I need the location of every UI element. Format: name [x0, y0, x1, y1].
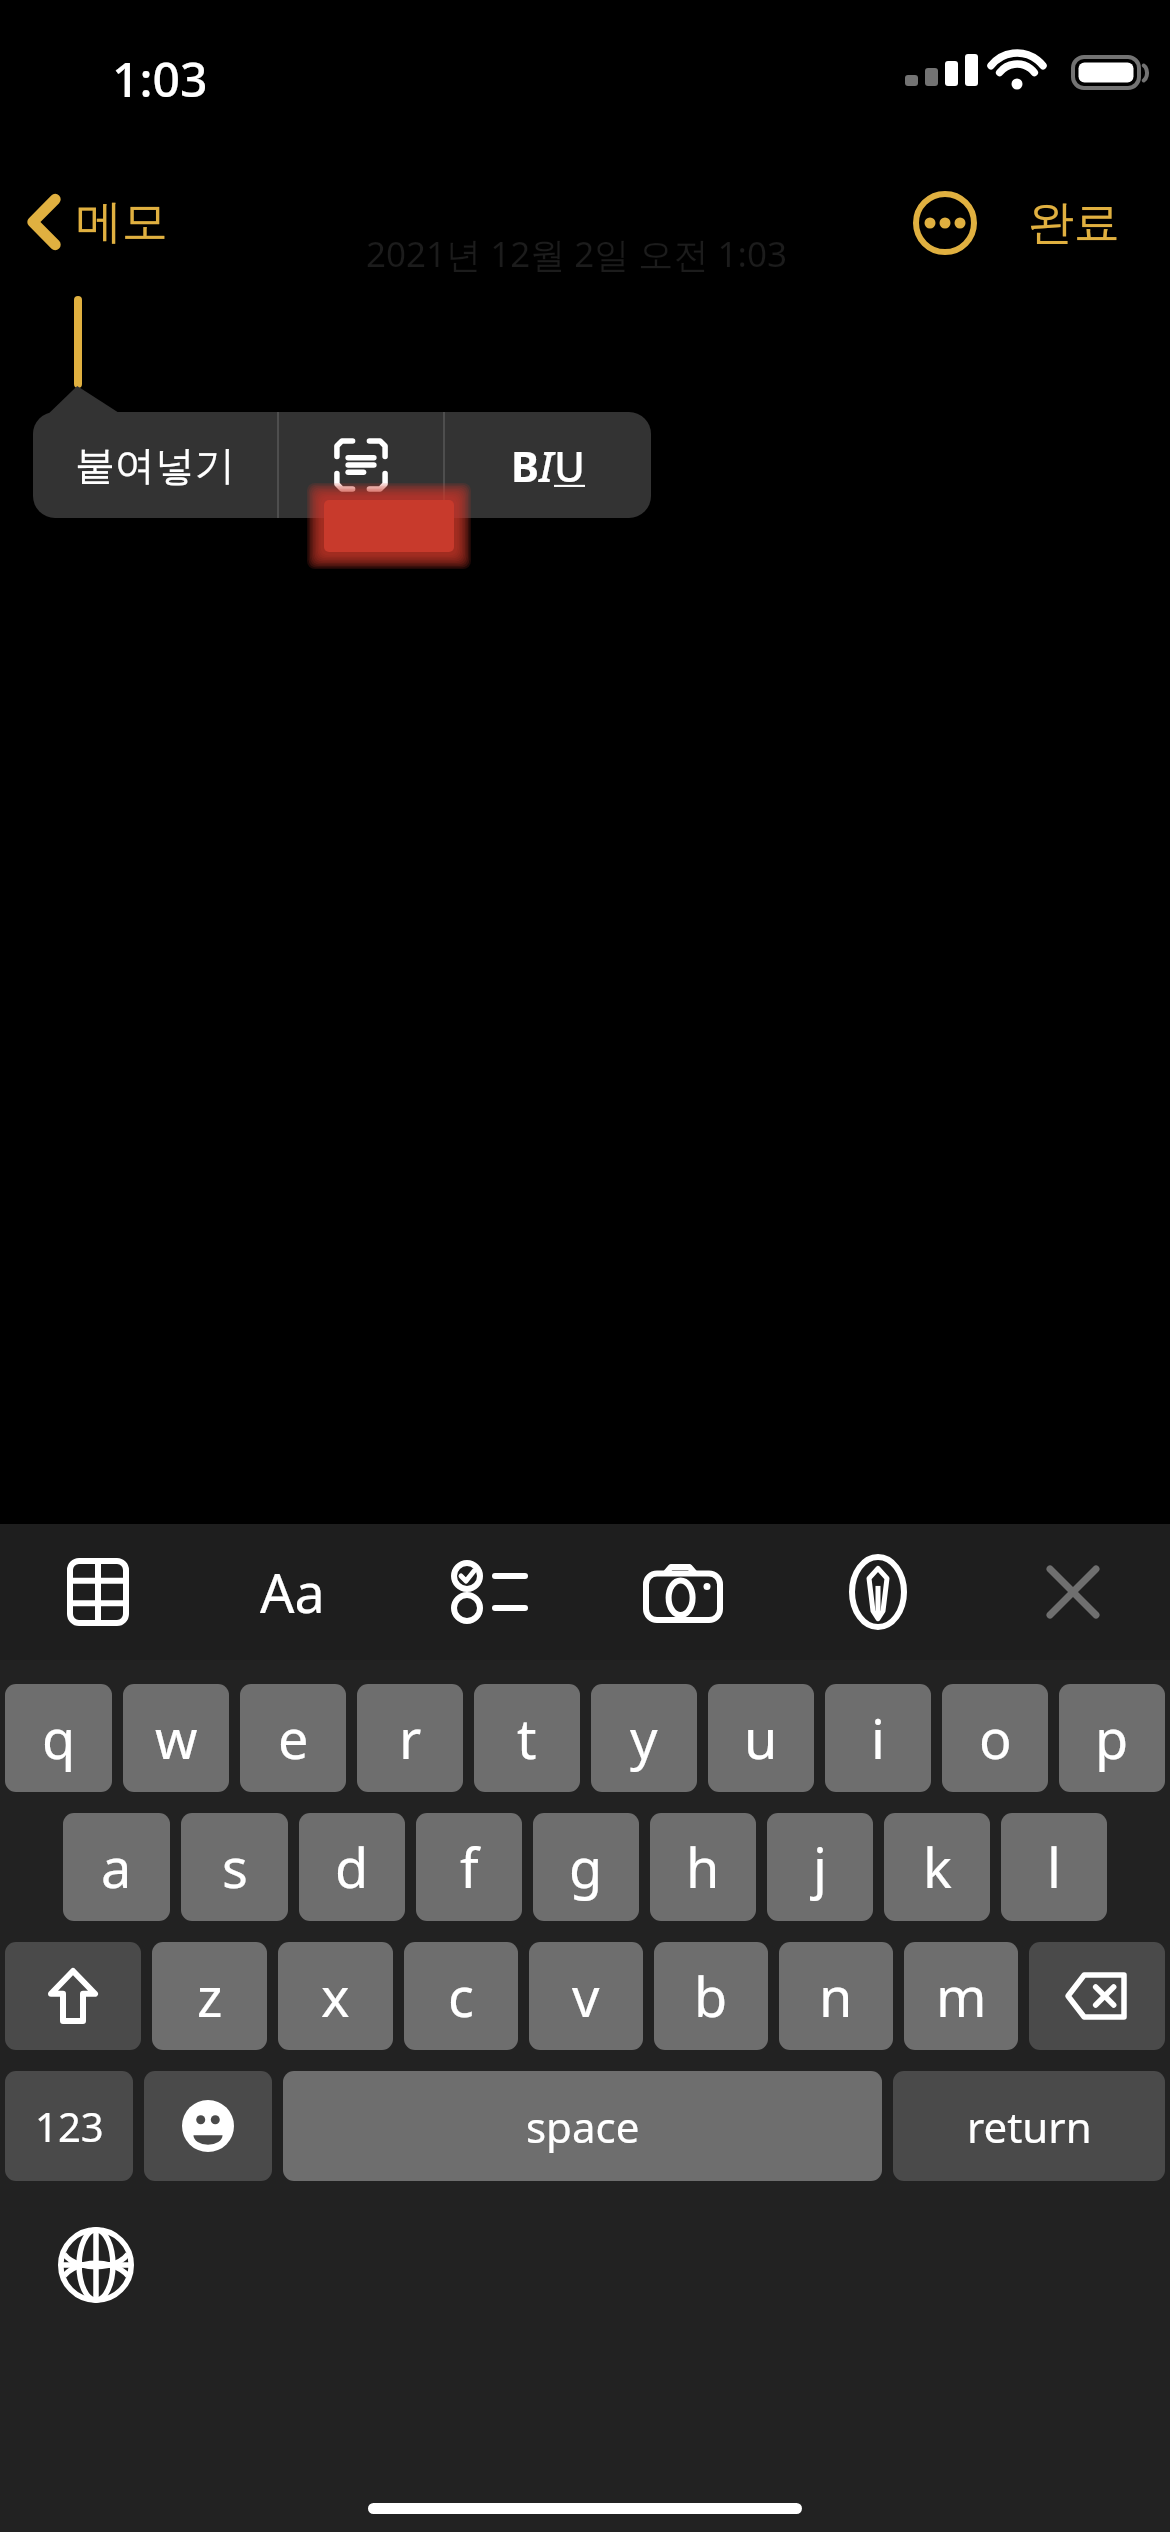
button[interactable]: space	[283, 2071, 882, 2181]
staticText: w	[155, 1701, 198, 1775]
button[interactable]: q	[5, 1684, 112, 1792]
staticText: n	[819, 1959, 853, 2033]
staticText: 메모	[76, 193, 168, 251]
button[interactable]: o	[942, 1684, 1048, 1792]
staticText: c	[448, 1959, 474, 2033]
button[interactable]: p	[1059, 1684, 1165, 1792]
staticText: k	[923, 1830, 952, 1904]
staticText: m	[936, 1959, 987, 2033]
button[interactable]: s	[181, 1813, 288, 1921]
button[interactable]: g	[533, 1813, 639, 1921]
button[interactable]: Change keyboard	[40, 2209, 152, 2321]
button[interactable]: Backspace	[1029, 1942, 1165, 2050]
staticText: j	[813, 1830, 827, 1904]
staticText: I	[539, 437, 554, 494]
button[interactable]: e	[240, 1684, 346, 1792]
button[interactable]: j	[767, 1813, 873, 1921]
button[interactable]: z	[152, 1942, 267, 2050]
staticText: o	[979, 1701, 1012, 1775]
staticText: d	[335, 1830, 369, 1904]
button[interactable]: d	[299, 1813, 405, 1921]
button[interactable]: k	[884, 1813, 990, 1921]
button[interactable]: m	[904, 1942, 1018, 2050]
staticText: 123	[35, 2099, 104, 2153]
button[interactable]: a	[63, 1813, 170, 1921]
staticText: u	[744, 1701, 778, 1775]
staticText: Aa	[260, 1555, 325, 1629]
button[interactable]: Emoji	[144, 2071, 272, 2181]
button[interactable]: return	[893, 2071, 1165, 2181]
staticText: s	[222, 1830, 248, 1904]
staticText: U	[554, 437, 585, 494]
staticText: b	[694, 1959, 728, 2033]
button[interactable]: Close	[975, 1524, 1170, 1660]
staticText: return	[967, 2098, 1092, 2155]
button[interactable]: Insert table	[0, 1524, 195, 1660]
button[interactable]: Camera	[585, 1524, 780, 1660]
button[interactable]: b	[654, 1942, 768, 2050]
button[interactable]: v	[529, 1942, 643, 2050]
button[interactable]: 메모	[14, 166, 182, 278]
staticText: t	[517, 1701, 537, 1775]
button[interactable]: y	[591, 1684, 697, 1792]
button[interactable]: u	[708, 1684, 814, 1792]
staticText: v	[572, 1959, 600, 2033]
button[interactable]: Scan text	[279, 412, 443, 518]
button[interactable]: x	[278, 1942, 393, 2050]
button[interactable]: More options	[896, 174, 994, 272]
button[interactable]: h	[650, 1813, 756, 1921]
staticText: x	[321, 1959, 350, 2033]
button[interactable]: 붙여넣기	[33, 412, 277, 518]
staticText: a	[101, 1830, 132, 1904]
button[interactable]: r	[357, 1684, 463, 1792]
staticText: e	[278, 1701, 309, 1775]
staticText: f	[460, 1830, 479, 1904]
button[interactable]: Shift	[5, 1942, 141, 2050]
staticText: r	[399, 1701, 422, 1775]
button[interactable]: f	[416, 1813, 522, 1921]
staticText: p	[1095, 1701, 1129, 1775]
staticText: 2021년 12월 2일 오전 1:03	[366, 230, 787, 278]
button[interactable]: 완료	[1016, 172, 1132, 274]
staticText: h	[686, 1830, 720, 1904]
button[interactable]: w	[123, 1684, 229, 1792]
staticText: space	[526, 2098, 640, 2155]
staticText: g	[569, 1830, 603, 1904]
button[interactable]: Checklist	[390, 1524, 585, 1660]
button[interactable]: i	[825, 1684, 931, 1792]
staticText: l	[1047, 1830, 1061, 1904]
staticText: i	[871, 1701, 885, 1775]
button[interactable]: Text format	[195, 1524, 390, 1660]
staticText: 완료	[1028, 194, 1120, 252]
staticText: q	[42, 1701, 76, 1775]
staticText: z	[197, 1959, 223, 2033]
button[interactable]: n	[779, 1942, 893, 2050]
button[interactable]: l	[1001, 1813, 1107, 1921]
staticText: y	[630, 1701, 658, 1775]
button[interactable]: 123	[5, 2071, 133, 2181]
staticText: 붙여넣기	[75, 440, 235, 490]
staticText: 1:03	[112, 46, 208, 111]
button[interactable]: B	[445, 412, 651, 518]
button[interactable]: Markup	[780, 1524, 975, 1660]
button[interactable]: c	[404, 1942, 518, 2050]
staticText: B	[511, 437, 539, 494]
button[interactable]: t	[474, 1684, 580, 1792]
